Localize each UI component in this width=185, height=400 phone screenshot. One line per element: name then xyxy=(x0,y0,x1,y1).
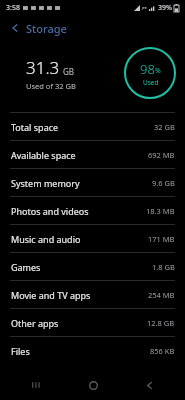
button[interactable]: Back xyxy=(129,370,169,400)
button[interactable]: System memory xyxy=(0,169,185,196)
staticText: ᴶᵀᴱ xyxy=(142,5,147,12)
button[interactable]: Files xyxy=(0,337,185,364)
staticText: System memory xyxy=(11,177,80,189)
staticText: 32 GB xyxy=(154,122,175,132)
button[interactable]: Home xyxy=(73,370,113,400)
button[interactable]: Other apps xyxy=(0,309,185,336)
staticText: Photos and videos xyxy=(11,205,89,217)
staticText: 856 KB xyxy=(150,346,175,356)
staticText: Music and audio xyxy=(11,233,81,245)
staticText: Files xyxy=(11,345,30,357)
button[interactable]: Music and audio xyxy=(0,225,185,252)
staticText: Other apps xyxy=(11,317,59,329)
staticText: 1.8 GB xyxy=(152,262,175,272)
staticText: 3:58 xyxy=(6,3,20,13)
staticText: 12.8 GB xyxy=(147,318,175,328)
staticText: % xyxy=(155,66,161,76)
staticText: 692 MB xyxy=(148,150,175,160)
staticText: 18.3 MB xyxy=(146,206,175,216)
button[interactable]: Photos and videos xyxy=(0,197,185,224)
staticText: 39% xyxy=(158,3,172,13)
staticText: Used xyxy=(143,78,159,87)
button[interactable]: Back xyxy=(0,16,185,40)
button[interactable]: Recents xyxy=(16,370,56,400)
staticText: Games xyxy=(11,261,41,273)
staticText: Movie and TV apps xyxy=(11,289,91,301)
button[interactable]: Games xyxy=(0,253,185,280)
other: Back xyxy=(10,23,20,33)
staticText: 31.3 xyxy=(26,56,60,79)
staticText: 254 MB xyxy=(148,290,175,300)
staticText: 98 xyxy=(140,60,155,78)
staticText: Used of 32 GB xyxy=(26,81,76,91)
staticText: GB xyxy=(63,66,75,77)
staticText: 171 MB xyxy=(148,234,175,244)
button[interactable]: Available space xyxy=(0,141,185,168)
button[interactable]: Total space xyxy=(0,113,185,140)
button[interactable]: Movie and TV apps xyxy=(0,281,185,308)
staticText: Available space xyxy=(11,149,76,161)
staticText: 9.6 GB xyxy=(152,178,175,188)
staticText: Storage xyxy=(26,21,67,36)
staticText: Total space xyxy=(11,121,59,133)
